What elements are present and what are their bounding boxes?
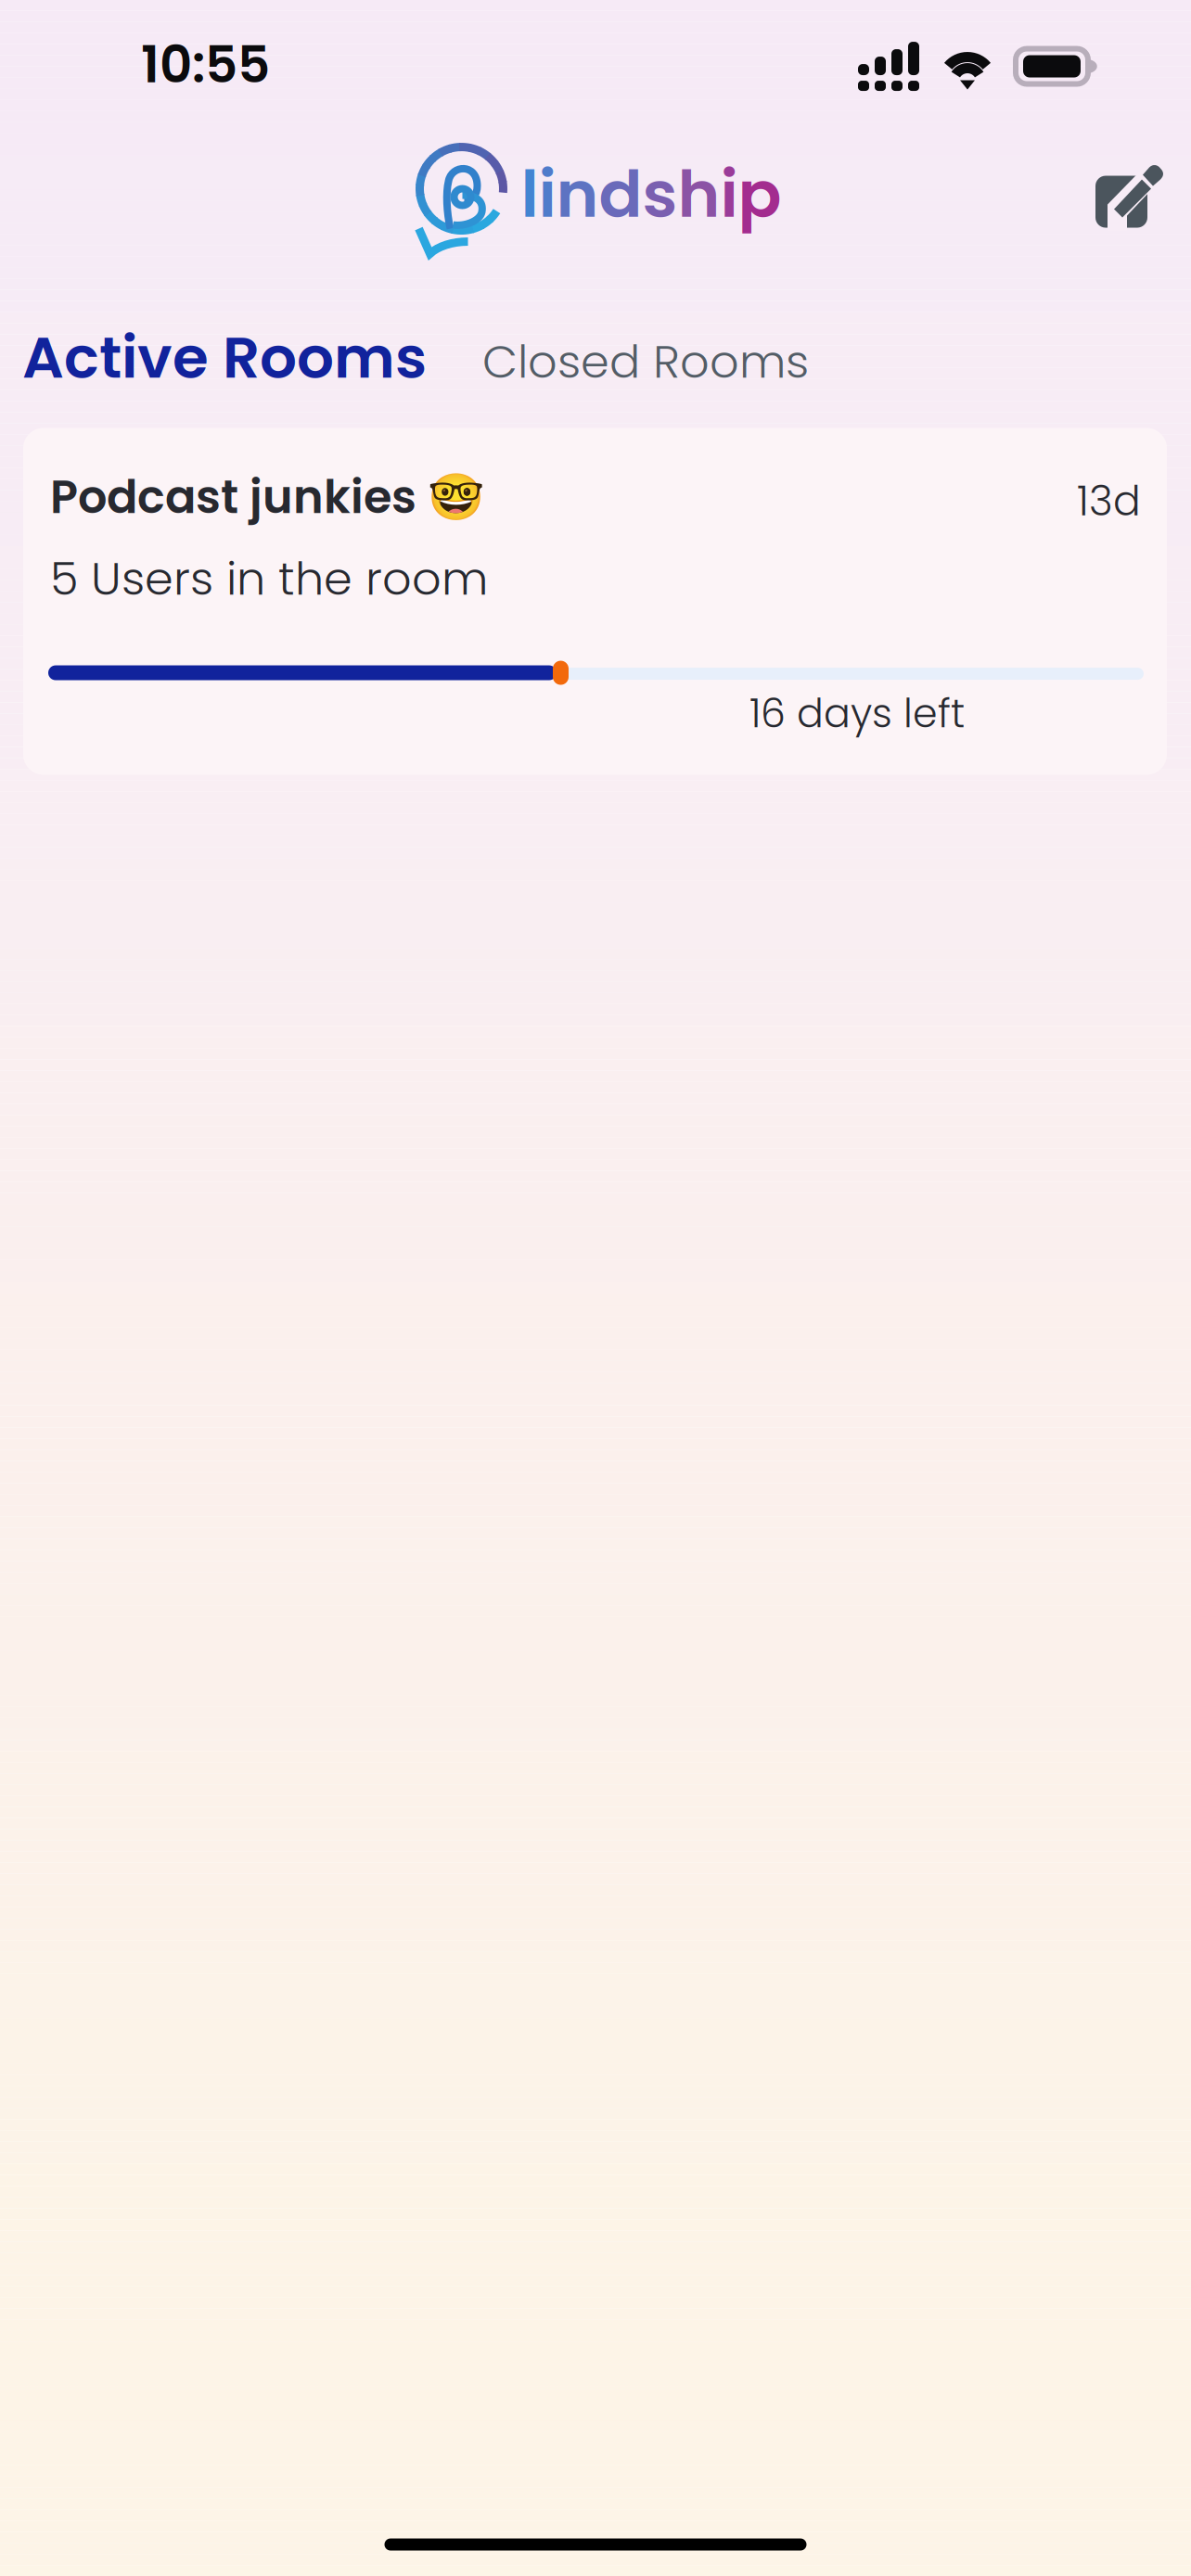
- staticText: 13d: [1077, 472, 1141, 530]
- staticText: Podcast junkies 🤓: [50, 465, 484, 529]
- staticText: l: [521, 149, 538, 239]
- button[interactable]: Compose: [1094, 163, 1166, 233]
- staticText: n: [556, 149, 599, 239]
- staticText: p: [738, 149, 781, 239]
- staticText: s: [642, 149, 678, 239]
- staticText: 5 Users in the room: [50, 547, 488, 611]
- staticText: d: [599, 149, 642, 239]
- staticText: i: [538, 149, 556, 239]
- button[interactable]: Podcast junkies 🤓: [23, 428, 1167, 775]
- staticText: 10:55: [141, 29, 270, 100]
- staticText: Active Rooms: [22, 317, 427, 398]
- staticText: i: [720, 149, 738, 239]
- staticText: 16 days left: [749, 686, 965, 741]
- staticText: h: [678, 149, 720, 239]
- button[interactable]: Closed Rooms: [482, 330, 809, 394]
- button[interactable]: Active Rooms: [22, 317, 427, 398]
- staticText: Closed Rooms: [482, 330, 809, 394]
